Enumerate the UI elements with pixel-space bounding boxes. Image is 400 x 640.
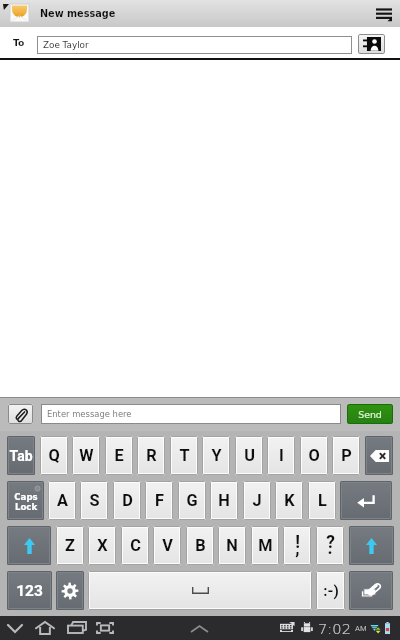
staticText: L <box>318 491 327 510</box>
button[interactable]: More options <box>372 2 396 26</box>
staticText: , <box>295 538 300 559</box>
button[interactable]: M <box>252 527 278 564</box>
button[interactable]: Enter message here <box>41 404 341 424</box>
button[interactable]: Shift <box>8 527 50 564</box>
button[interactable]: U <box>236 437 262 474</box>
staticText: Tab <box>9 448 33 464</box>
staticText: A <box>57 491 68 510</box>
staticText: C <box>130 536 141 555</box>
staticText: New message <box>40 8 116 19</box>
staticText: To <box>13 37 25 48</box>
staticText: J <box>252 491 262 510</box>
staticText: G <box>186 491 198 510</box>
staticText: 7:02 <box>318 620 351 637</box>
button[interactable]: X <box>89 527 115 564</box>
staticText: X <box>97 536 108 555</box>
button[interactable]: R <box>138 437 164 474</box>
staticText: T <box>179 446 190 465</box>
staticText: Z <box>65 536 75 555</box>
button[interactable]: Z <box>57 527 83 564</box>
staticText: Caps Lock <box>14 492 38 512</box>
button[interactable]: F <box>146 482 172 519</box>
button[interactable]: Zoe Taylor <box>37 36 352 54</box>
button[interactable]: E <box>106 437 132 474</box>
button[interactable]: Keyboard settings <box>57 572 83 609</box>
button[interactable]: ? <box>317 527 343 564</box>
staticText: I <box>279 446 284 465</box>
button[interactable]: Home <box>34 616 56 640</box>
button[interactable]: O <box>301 437 327 474</box>
button[interactable]: J <box>244 482 270 519</box>
staticText: O <box>308 446 320 465</box>
button[interactable]: W <box>73 437 99 474</box>
button[interactable]: Enter <box>341 482 391 519</box>
button[interactable]: 123 <box>8 572 51 609</box>
button[interactable]: G <box>179 482 205 519</box>
staticText: N <box>226 536 238 555</box>
staticText: H <box>218 491 230 510</box>
staticText: ! <box>295 532 300 553</box>
button[interactable]: H <box>211 482 237 519</box>
staticText: . <box>327 538 333 559</box>
staticText: Zoe Taylor <box>43 40 89 50</box>
staticText: R <box>146 446 157 465</box>
button[interactable]: S <box>81 482 107 519</box>
button[interactable]: A <box>49 482 75 519</box>
button[interactable]: Attach file <box>8 404 33 424</box>
staticText: F <box>155 491 164 510</box>
button[interactable]: Q <box>41 437 67 474</box>
staticText: Send <box>358 409 382 420</box>
staticText: S <box>89 491 100 510</box>
staticText: M <box>258 536 273 555</box>
button[interactable]: Space <box>89 572 311 609</box>
button[interactable]: Caps lock <box>8 482 43 519</box>
staticText: :-) <box>323 582 339 600</box>
button[interactable]: C <box>122 527 148 564</box>
button[interactable]: Recent apps <box>65 616 87 640</box>
staticText: P <box>341 446 352 465</box>
button[interactable]: B <box>187 527 213 564</box>
button[interactable]: ! <box>284 527 310 564</box>
button[interactable]: D <box>114 482 140 519</box>
staticText: Enter message here <box>47 409 132 419</box>
staticText: 123 <box>16 582 43 600</box>
button[interactable]: Choose contact <box>358 34 385 54</box>
button[interactable]: Y <box>203 437 229 474</box>
button[interactable]: I <box>268 437 294 474</box>
staticText: ? <box>326 532 335 553</box>
button[interactable]: L <box>309 482 335 519</box>
button[interactable]: :-) <box>317 572 344 609</box>
button[interactable]: Attach <box>350 572 392 609</box>
button[interactable]: Backspace <box>366 437 392 474</box>
button[interactable]: T <box>171 437 197 474</box>
button[interactable]: N <box>219 527 245 564</box>
button[interactable]: Send <box>347 404 393 424</box>
staticText: Q <box>48 446 60 465</box>
staticText: W <box>79 446 94 465</box>
button[interactable]: Shift <box>350 527 393 564</box>
button[interactable]: Tab <box>8 437 34 474</box>
staticText: D <box>122 491 133 510</box>
button[interactable]: Screenshot <box>94 616 116 640</box>
button[interactable]: V <box>154 527 180 564</box>
staticText: V <box>162 536 173 555</box>
staticText: B <box>195 536 206 555</box>
button[interactable]: Hide keyboard <box>4 616 25 640</box>
staticText: Y <box>211 446 222 465</box>
staticText: U <box>244 446 255 465</box>
staticText: E <box>114 446 124 465</box>
button[interactable]: K <box>276 482 302 519</box>
button[interactable]: P <box>333 437 359 474</box>
staticText: K <box>284 491 295 510</box>
staticText: AM <box>355 624 367 633</box>
